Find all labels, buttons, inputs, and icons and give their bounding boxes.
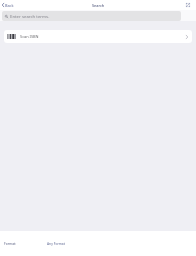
staticText: Enter search terms. xyxy=(10,13,50,19)
button[interactable]: Scan ISBN xyxy=(4,30,192,43)
button[interactable]: Scan barcode xyxy=(183,0,193,10)
button[interactable]: Back xyxy=(0,0,16,10)
staticText: Format: xyxy=(4,241,17,245)
staticText: Any Format xyxy=(47,241,65,245)
button[interactable]: Enter search terms. xyxy=(2,11,181,21)
button[interactable]: Any Format xyxy=(47,241,65,245)
staticText: Back xyxy=(5,3,14,8)
staticText: Search xyxy=(92,3,105,8)
staticText: Scan ISBN xyxy=(20,34,39,39)
